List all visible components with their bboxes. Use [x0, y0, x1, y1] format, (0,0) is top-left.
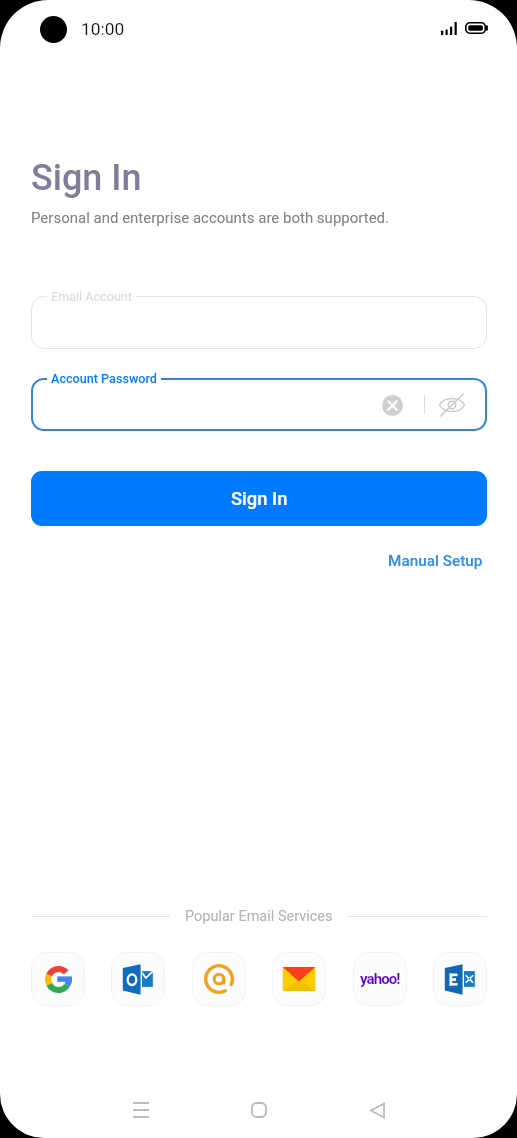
button[interactable]: Home — [235, 1086, 283, 1134]
button[interactable] — [31, 296, 487, 349]
staticText: Popular Email Services — [185, 908, 333, 925]
button[interactable]: Sign In — [31, 471, 487, 526]
button[interactable]: Exchange — [433, 952, 487, 1006]
staticText: Personal and enterprise accounts are bot… — [31, 209, 390, 227]
button[interactable]: Recent apps — [117, 1086, 165, 1134]
button[interactable] — [31, 378, 487, 431]
button[interactable]: Google — [31, 952, 85, 1006]
staticText: Sign In — [31, 157, 142, 199]
staticText: yahoo! — [360, 970, 400, 988]
button[interactable]: Back — [353, 1086, 401, 1134]
button[interactable]: Clear text — [378, 391, 406, 419]
button[interactable]: Outlook — [111, 952, 165, 1006]
staticText: Account Password — [51, 371, 157, 386]
button[interactable]: Yahoo Mail — [353, 952, 407, 1006]
button[interactable]: Manual Setup — [382, 547, 489, 575]
button[interactable]: Mail — [192, 952, 246, 1006]
button[interactable]: Show password — [437, 390, 467, 420]
button[interactable]: Yandex Mail — [272, 952, 326, 1006]
staticText: Manual Setup — [388, 552, 483, 570]
staticText: 10:00 — [81, 19, 125, 39]
staticText: Sign In — [231, 488, 288, 510]
staticText: Email Account — [51, 289, 132, 304]
